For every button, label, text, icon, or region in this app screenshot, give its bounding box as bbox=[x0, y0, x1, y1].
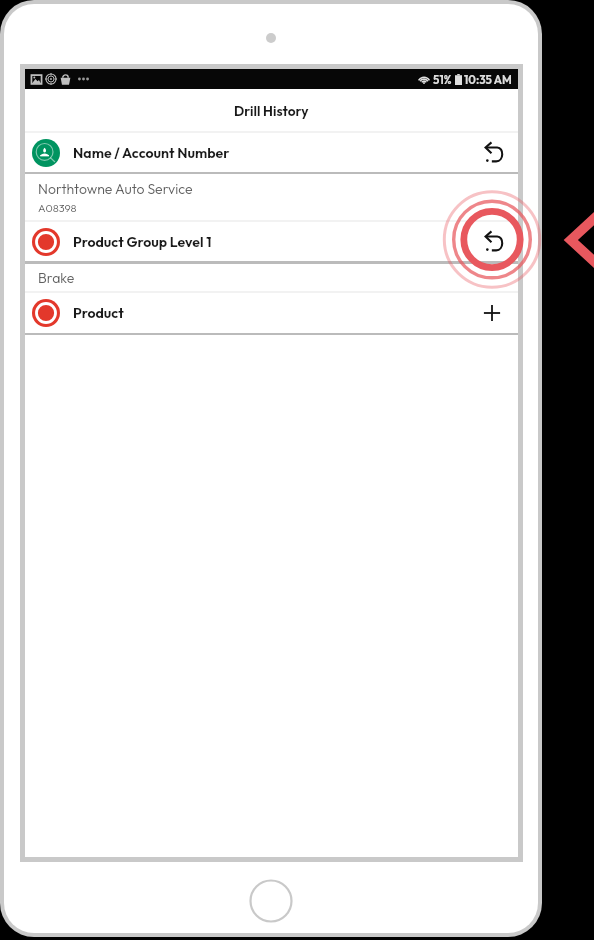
staticText: 51% bbox=[433, 72, 452, 86]
staticText: 10:35 AM bbox=[464, 72, 512, 86]
staticText: Drill History bbox=[234, 102, 309, 119]
staticText: Brake bbox=[38, 269, 75, 287]
button[interactable]: Brake bbox=[25, 264, 518, 291]
staticText: A08398 bbox=[38, 201, 77, 215]
button[interactable]: Name / Account Number bbox=[25, 133, 518, 172]
staticText: Product bbox=[73, 304, 124, 322]
staticText: Name / Account Number bbox=[73, 144, 230, 162]
staticText: Northtowne Auto Service bbox=[38, 180, 193, 198]
staticText: Product Group Level 1 bbox=[73, 233, 212, 251]
button[interactable]: Northtowne Auto Service bbox=[25, 174, 518, 220]
button[interactable]: Product Group Level 1 bbox=[25, 222, 518, 261]
button[interactable]: Undo bbox=[473, 135, 509, 171]
button[interactable]: Undo bbox=[473, 224, 509, 260]
button[interactable]: Add bbox=[473, 295, 509, 331]
button[interactable]: Product bbox=[25, 293, 518, 333]
